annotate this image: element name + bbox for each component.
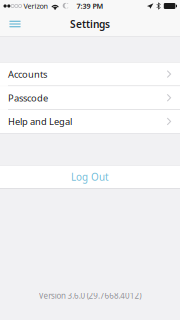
staticText: Passcode bbox=[8, 91, 48, 104]
staticText: Log Out bbox=[71, 170, 109, 184]
button[interactable]: Passcode bbox=[0, 86, 180, 109]
button[interactable]: Menu bbox=[5, 12, 25, 36]
staticText: Accounts bbox=[8, 68, 47, 80]
button[interactable]: Help and Legal bbox=[0, 110, 180, 133]
button[interactable]: Accounts bbox=[0, 62, 180, 86]
staticText: 7:39 PM bbox=[76, 1, 103, 11]
staticText: Verizon bbox=[24, 1, 48, 11]
staticText: Help and Legal bbox=[8, 115, 72, 128]
staticText: Settings bbox=[70, 17, 110, 31]
staticText: Version 3.6.0 (29.7668.4012) bbox=[39, 290, 141, 301]
button[interactable]: Log Out bbox=[0, 165, 180, 188]
